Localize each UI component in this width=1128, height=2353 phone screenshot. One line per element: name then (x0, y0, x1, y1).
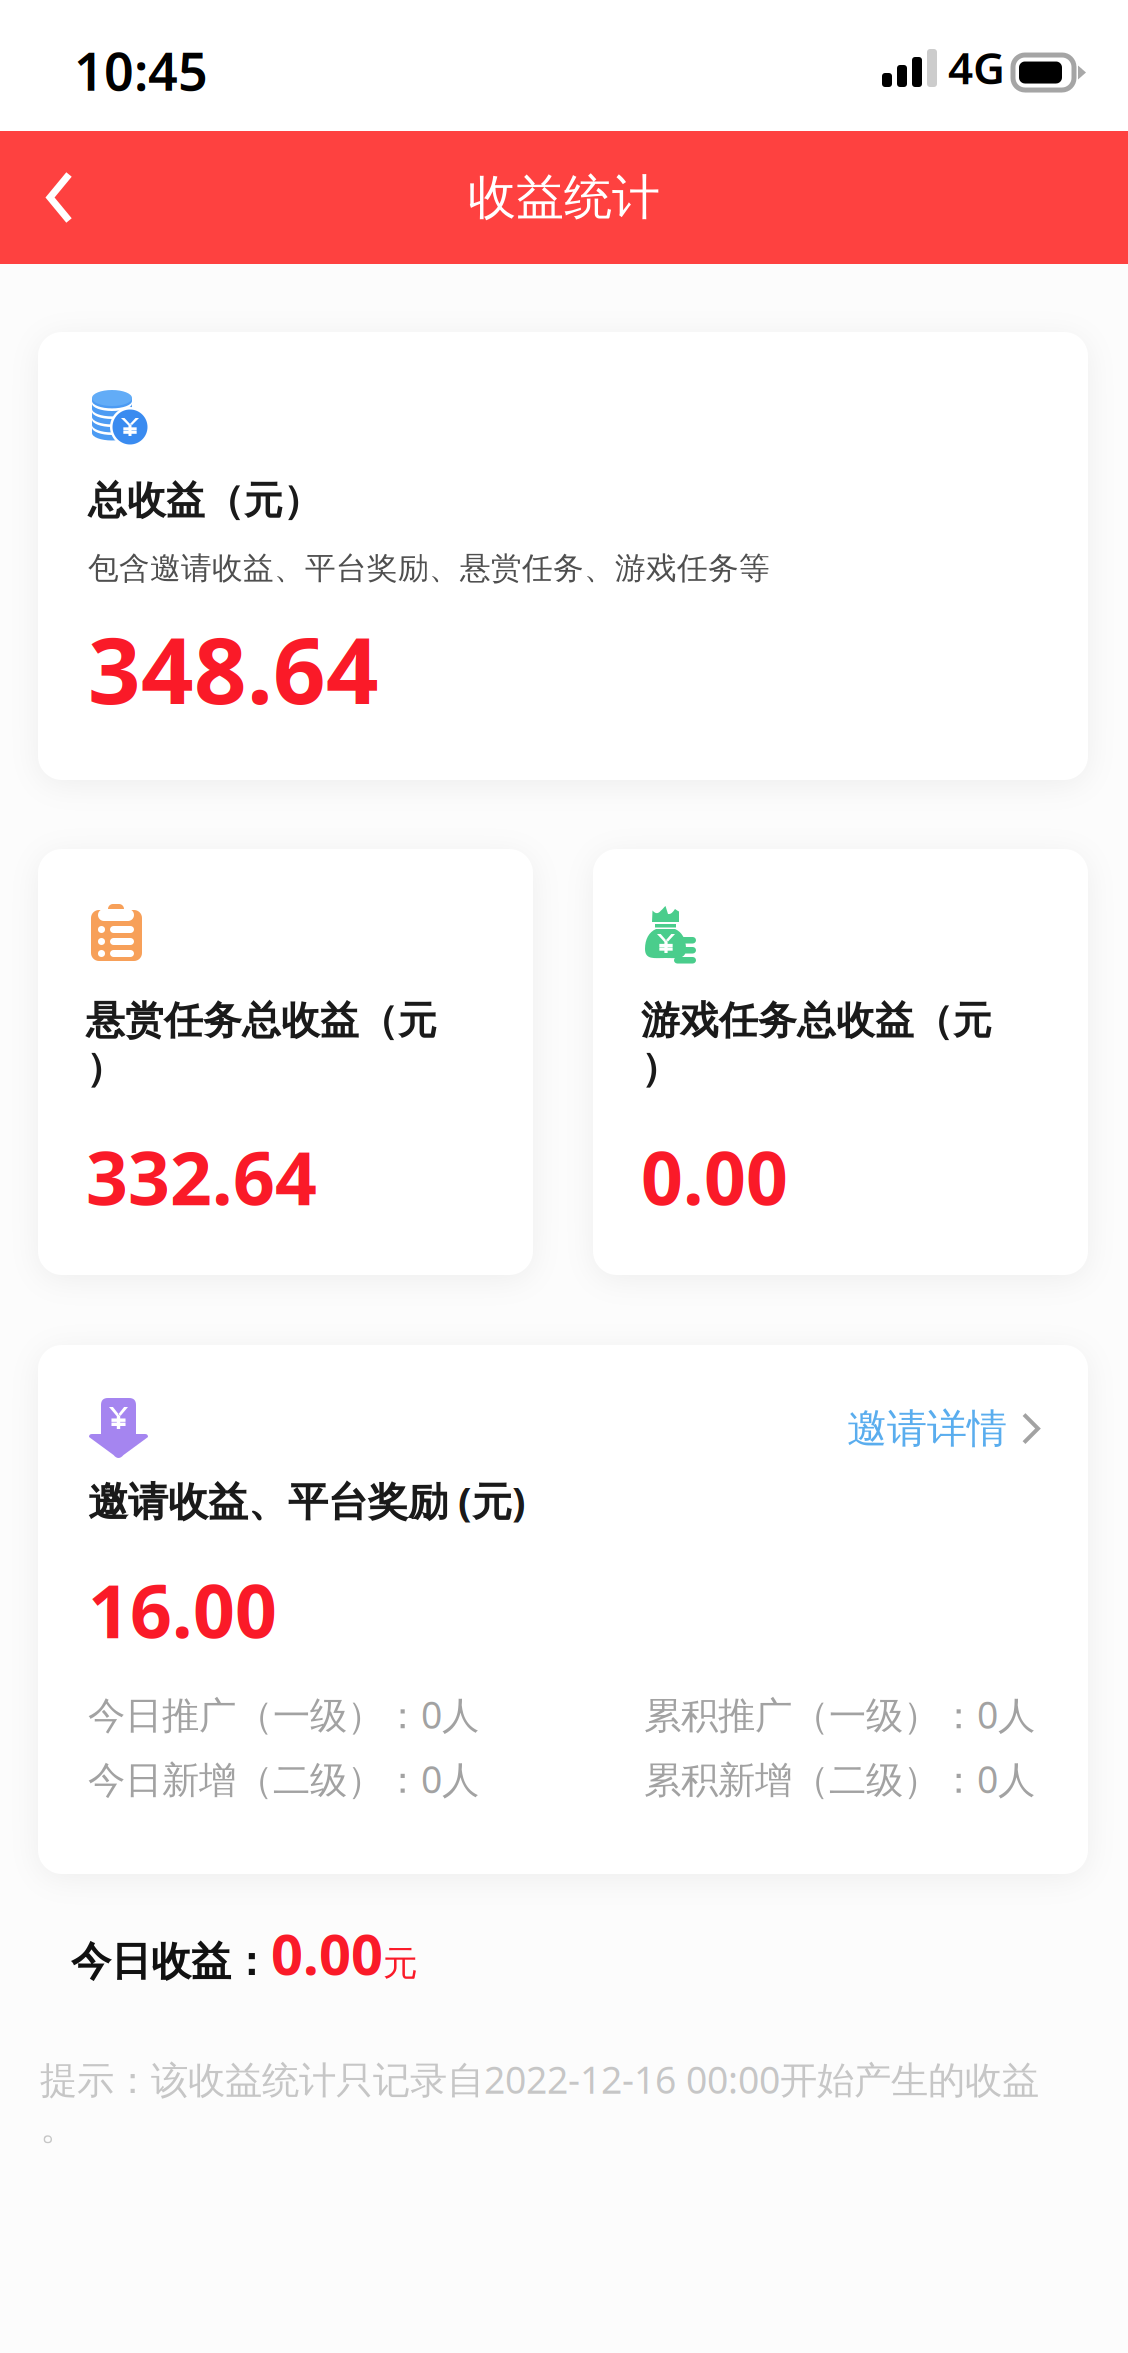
button[interactable]: 邀请详情 (847, 1396, 1050, 1461)
staticText: 348.64 (88, 607, 379, 729)
staticText: 游戏任务总收益（元 ） (641, 997, 992, 1092)
staticText: 今日推广（一级）：0人 (88, 1689, 479, 1739)
staticText: 悬赏任务总收益（元 ） (86, 997, 437, 1092)
staticText: 今日新增（二级）：0人 (88, 1754, 479, 1804)
staticText: 元 (383, 1942, 418, 1985)
staticText: 0.00 (641, 1128, 788, 1225)
staticText: 邀请详情 (847, 1404, 1007, 1453)
staticText: 包含邀请收益、平台奖励、悬赏任务、游戏任务等 (88, 549, 770, 587)
staticText: 332.64 (86, 1128, 317, 1225)
staticText: 累积推广（一级）：0人 (644, 1689, 1035, 1739)
button[interactable]: 返回 (0, 134, 110, 260)
staticText: 10:45 (74, 36, 208, 105)
staticText: 提示：该收益统计只记录自2022-12-16 00:00开始产生的收益 。 (40, 2054, 1039, 2150)
staticText: 总收益（元） (88, 477, 322, 524)
staticText: 累积新增（二级）：0人 (644, 1754, 1035, 1804)
staticText: 收益统计 (468, 168, 660, 227)
staticText: 今日收益： (71, 1937, 271, 1986)
staticText: 4G (948, 38, 1005, 96)
staticText: 邀请收益、平台奖励 (元) (88, 1474, 526, 1527)
staticText: 0.00 (271, 1916, 383, 1990)
staticText: 16.00 (88, 1561, 277, 1658)
